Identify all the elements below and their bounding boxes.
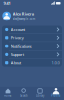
staticText: Alex Rivera [13, 11, 34, 17]
staticText: 9:41 [3, 1, 10, 6]
button[interactable]: Account [2, 25, 62, 33]
staticText: Search [20, 94, 28, 98]
button[interactable]: Search [16, 87, 32, 100]
button[interactable]: About [2, 59, 62, 67]
staticText: Privacy [11, 35, 24, 40]
button[interactable]: Privacy [2, 34, 62, 42]
staticText: Library [36, 94, 44, 98]
staticText: About [11, 60, 21, 65]
button[interactable]: Home [0, 87, 16, 100]
staticText: Support [11, 52, 24, 57]
button[interactable]: Library [32, 87, 48, 100]
button[interactable]: Support [2, 50, 62, 58]
staticText: 1.0.0 [51, 60, 59, 65]
staticText: alex@example.com [13, 17, 35, 21]
staticText: Profile [51, 94, 61, 98]
button[interactable]: Notifications [2, 42, 62, 50]
staticText: Account [11, 27, 25, 32]
staticText: Notifications [11, 43, 32, 49]
staticText: Home [4, 94, 12, 98]
button[interactable]: Profile [48, 87, 64, 100]
